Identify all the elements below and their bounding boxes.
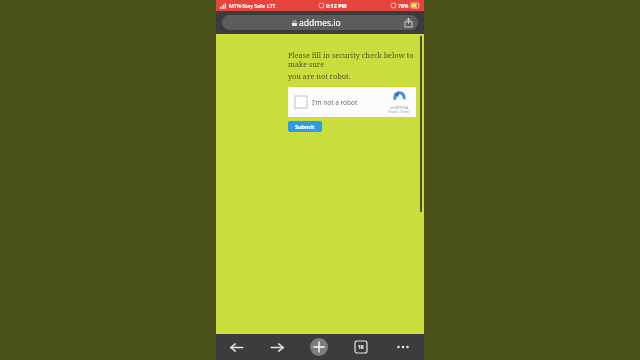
staticText: 9:12 PM [326,2,347,9]
staticText: I'm not a robot [312,98,358,107]
staticText: reCAPTCHA [390,105,409,110]
staticText: Privacy - Terms [388,110,410,114]
staticText: 78% [398,2,409,9]
other: Share [405,18,412,27]
button[interactable]: New tab [298,334,340,360]
staticText: addmes.io [299,17,341,29]
button[interactable]: Tabs [340,334,382,360]
staticText: Submit [295,123,315,130]
staticText: 16 [358,344,364,351]
button[interactable]: Forward [257,334,298,360]
button[interactable]: More options [382,334,424,360]
button[interactable]: I'm not a robot checkbox [288,87,416,117]
staticText: MTN-Stay Safe [229,2,265,9]
staticText: Please fill in security check below to m… [288,50,420,69]
staticText: you are not robot. [288,71,351,81]
other: I'm not a robot checkbox [295,96,307,108]
button[interactable]: Submit [288,121,322,132]
button[interactable]: addmes.io [222,15,418,30]
staticText: LTE [267,2,276,9]
button[interactable]: Back [216,334,257,360]
